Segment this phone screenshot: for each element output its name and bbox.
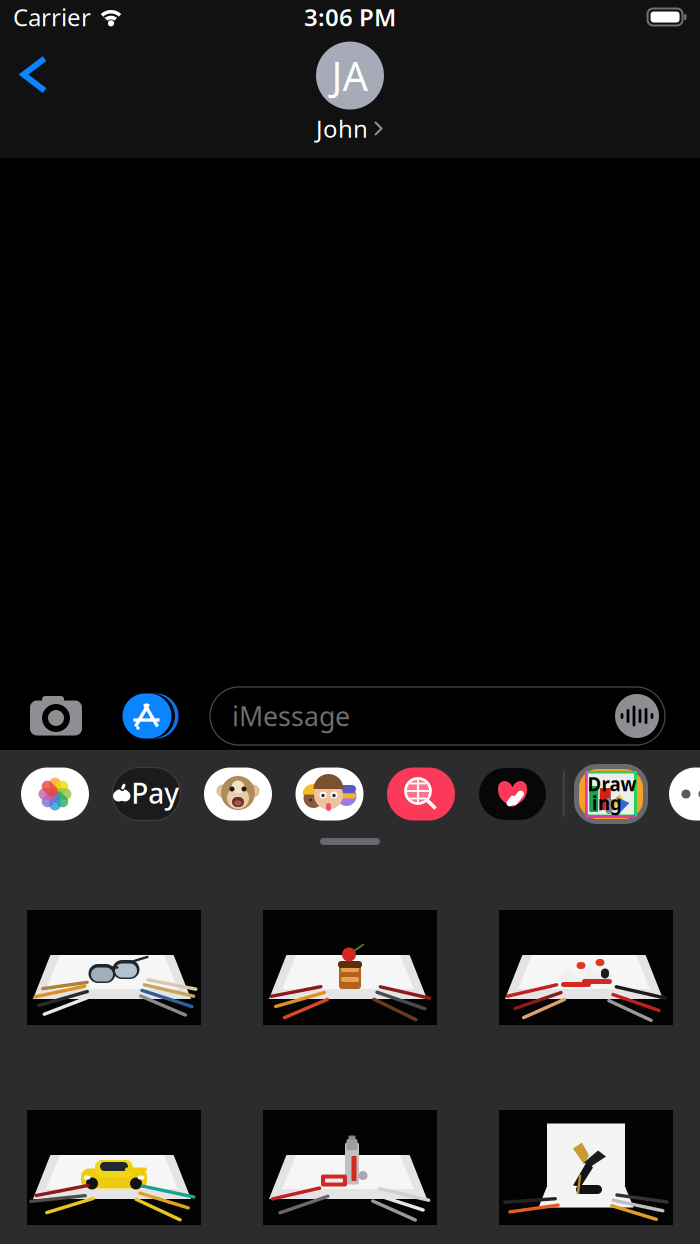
staticText: 3:06 PM <box>304 1 396 33</box>
staticText: Pay <box>131 774 179 812</box>
staticText: John <box>316 113 368 144</box>
staticText: iMessage <box>232 698 350 734</box>
button[interactable]: Apple Pay <box>112 767 180 820</box>
button[interactable]: Camera <box>28 689 84 745</box>
button[interactable] <box>499 1110 673 1225</box>
button[interactable] <box>27 910 201 1025</box>
button[interactable] <box>499 910 673 1025</box>
button[interactable]: Back <box>8 49 60 101</box>
staticText: JA <box>331 49 368 102</box>
staticText: Draw <box>587 772 636 796</box>
button[interactable]: More apps <box>669 767 700 820</box>
button[interactable]: Images <box>387 767 455 820</box>
button[interactable]: Animoji <box>204 767 272 820</box>
button[interactable] <box>263 910 437 1025</box>
button[interactable]: Apps <box>119 688 175 744</box>
staticText: Carrier <box>13 1 91 33</box>
button[interactable]: iMessage <box>210 687 665 745</box>
button[interactable] <box>263 1110 437 1225</box>
button[interactable]: Photos <box>21 767 89 820</box>
button[interactable]: Memoji <box>295 767 363 820</box>
staticText: ing <box>592 791 622 815</box>
button[interactable] <box>27 1110 201 1225</box>
button[interactable]: JA <box>316 42 384 144</box>
button[interactable]: Digital Touch <box>478 767 546 820</box>
button[interactable]: Drawing <box>574 764 648 824</box>
